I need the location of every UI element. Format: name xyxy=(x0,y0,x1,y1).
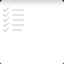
button[interactable]: Task 1 xyxy=(3,7,64,12)
button[interactable]: Task 3 xyxy=(3,17,64,22)
button[interactable]: Task 2 xyxy=(3,12,64,17)
button[interactable]: Task 4 xyxy=(3,22,64,27)
button[interactable]: Task 5 xyxy=(3,27,64,32)
